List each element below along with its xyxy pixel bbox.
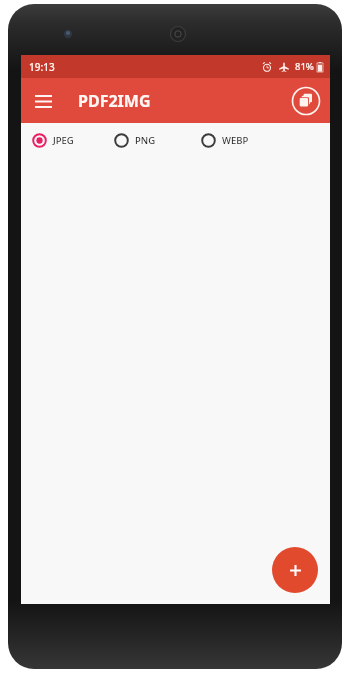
staticText: WEBP [222, 134, 249, 147]
button[interactable]: Add PDF [272, 547, 318, 593]
staticText: PNG [135, 134, 156, 147]
button[interactable]: Select pages [290, 85, 322, 117]
button[interactable]: WEBP [201, 130, 249, 151]
button[interactable]: JPEG [32, 130, 74, 151]
button[interactable]: Open navigation drawer [26, 84, 60, 118]
staticText: PDF2IMG [78, 90, 151, 112]
staticText: JPEG [53, 134, 74, 147]
staticText: 19:13 [29, 60, 55, 74]
button[interactable]: PNG [114, 130, 156, 151]
staticText: 81% [295, 60, 314, 73]
